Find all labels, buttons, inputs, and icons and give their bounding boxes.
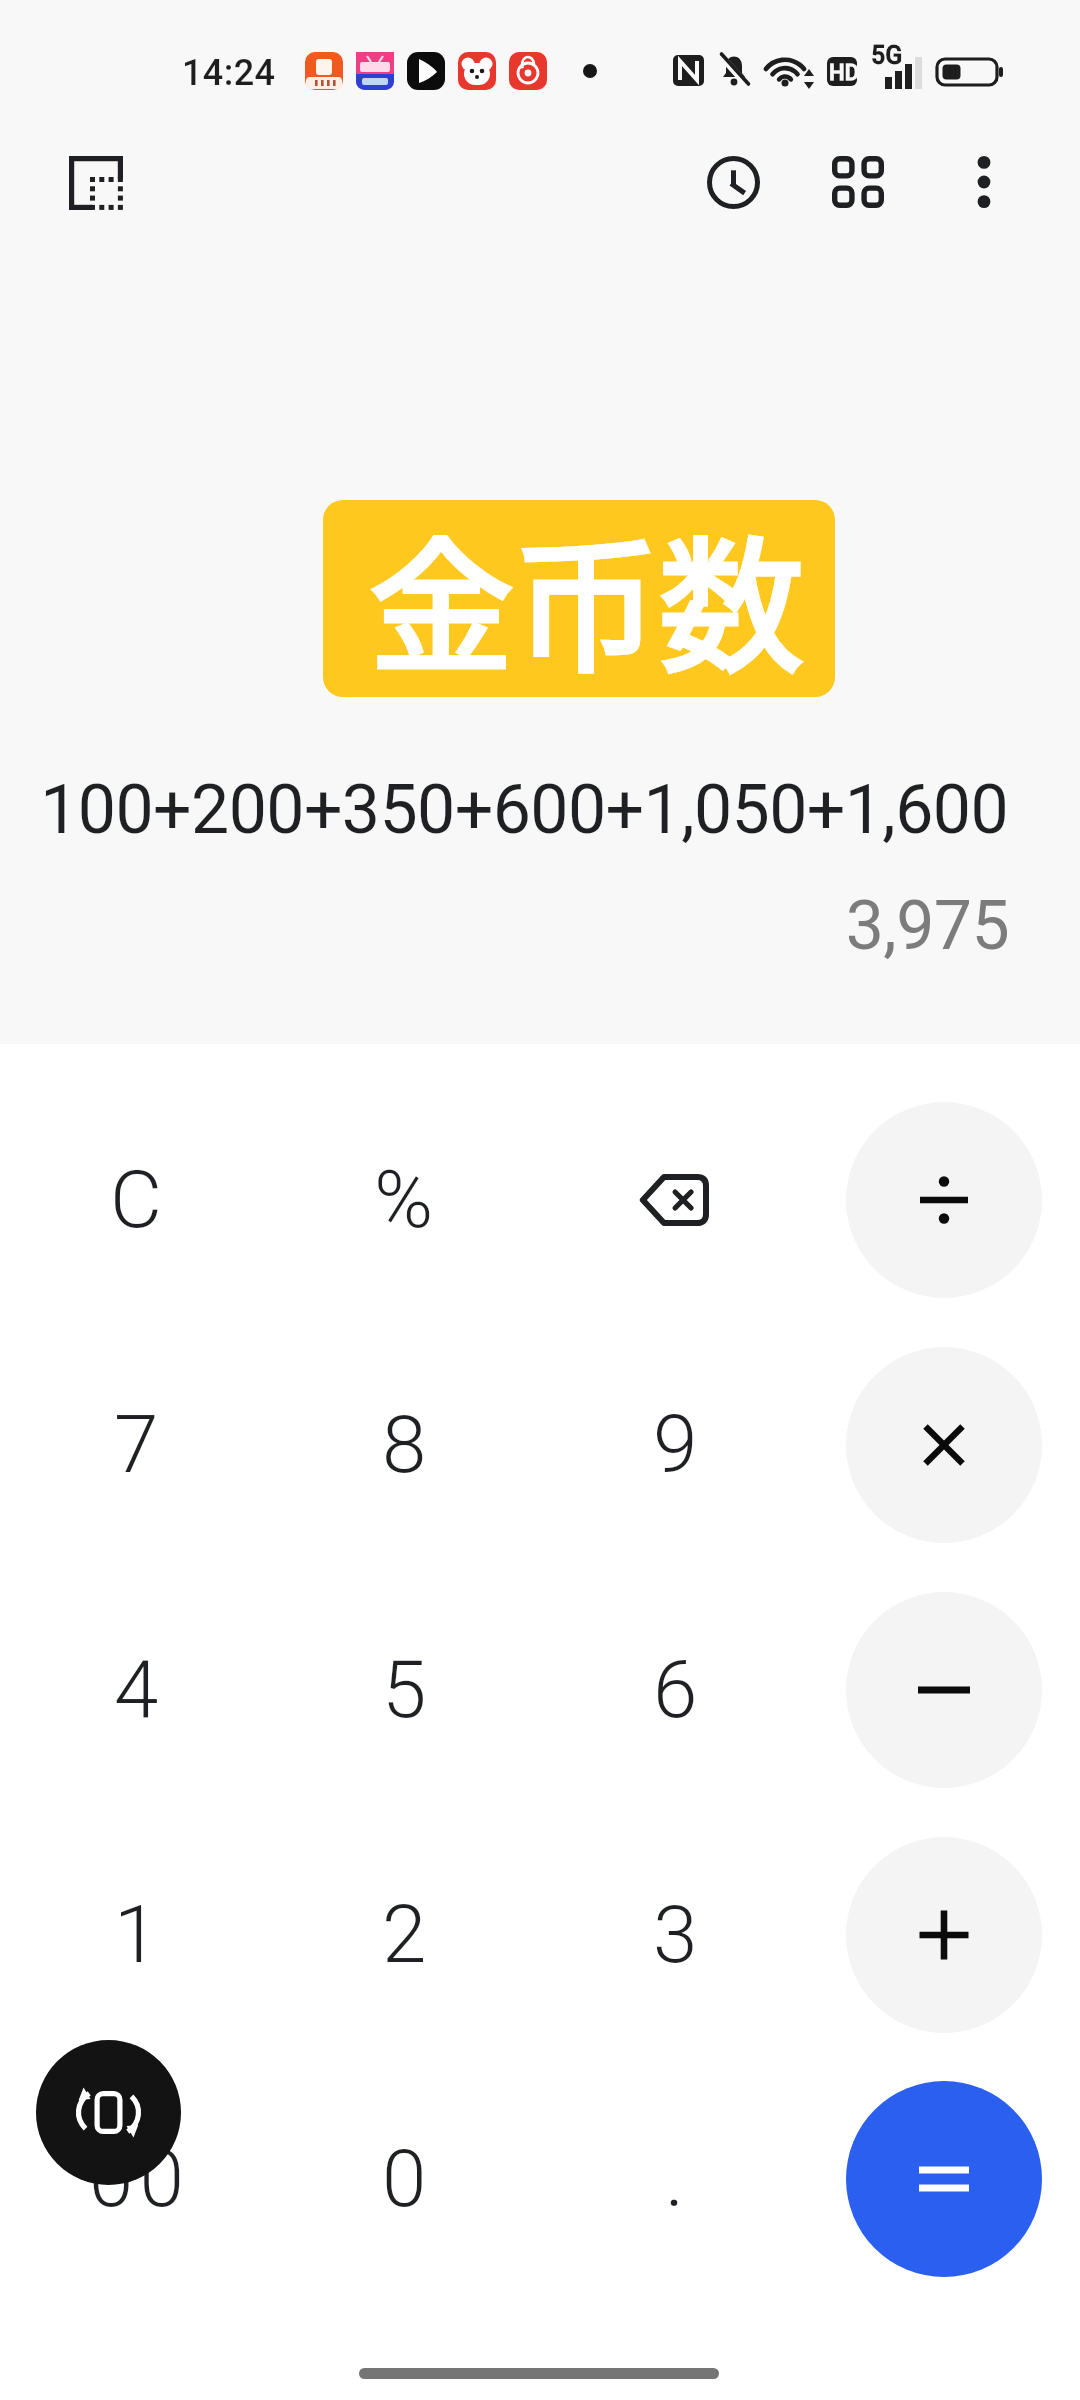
button[interactable]: Unit converter <box>808 132 908 232</box>
button[interactable]: Add <box>846 1837 1042 2033</box>
button[interactable]: 3 <box>555 1825 795 2045</box>
button[interactable]: C <box>16 1090 256 1310</box>
button[interactable]: More options <box>934 132 1034 232</box>
button[interactable]: 5 <box>284 1580 524 1800</box>
staticText: 金币数 <box>369 500 804 689</box>
staticText: 0 <box>382 2132 427 2226</box>
staticText: 5 <box>382 1643 427 1737</box>
button[interactable]: Rotate screen <box>36 2040 181 2185</box>
button[interactable]: 金币数 <box>323 500 835 697</box>
staticText: C <box>110 1153 162 1247</box>
button[interactable]: 1 <box>16 1825 256 2045</box>
button[interactable]: 00 <box>19 2069 259 2289</box>
staticText: 4 <box>114 1643 159 1737</box>
staticText: . <box>665 2132 685 2226</box>
staticText: HD <box>829 60 860 86</box>
button[interactable]: 4 <box>16 1580 256 1800</box>
button[interactable]: Equals <box>846 2081 1042 2277</box>
button[interactable]: 9 <box>555 1335 795 1555</box>
staticText: 7 <box>114 1398 159 1492</box>
staticText: 2 <box>382 1888 427 1982</box>
staticText: 14:24 <box>182 52 276 94</box>
staticText: 6 <box>653 1643 698 1737</box>
staticText: % <box>374 1153 434 1247</box>
staticText: 8 <box>382 1398 427 1492</box>
button[interactable]: Subtract <box>846 1592 1042 1788</box>
button[interactable]: % <box>284 1090 524 1310</box>
button[interactable]: 2 <box>284 1825 524 2045</box>
button[interactable]: Multiply <box>846 1347 1042 1543</box>
button[interactable]: Divide <box>846 1102 1042 1298</box>
button[interactable]: 0 <box>284 2069 524 2289</box>
staticText: 3,975 <box>0 886 1009 966</box>
staticText: 1 <box>114 1888 159 1982</box>
button[interactable]: 7 <box>16 1335 256 1555</box>
staticText: 100+200+350+600+1,050+1,600 <box>0 770 1008 850</box>
button[interactable]: 6 <box>555 1580 795 1800</box>
staticText: 9 <box>653 1398 698 1492</box>
button[interactable]: History <box>683 132 783 232</box>
staticText: 3 <box>653 1888 698 1982</box>
button[interactable]: Backspace <box>563 1090 783 1310</box>
button[interactable]: . <box>555 2069 795 2289</box>
button[interactable]: 8 <box>284 1335 524 1555</box>
button[interactable]: Selection mode <box>46 133 146 233</box>
staticText: 5G <box>871 41 903 70</box>
staticText: 00 <box>89 2132 190 2226</box>
